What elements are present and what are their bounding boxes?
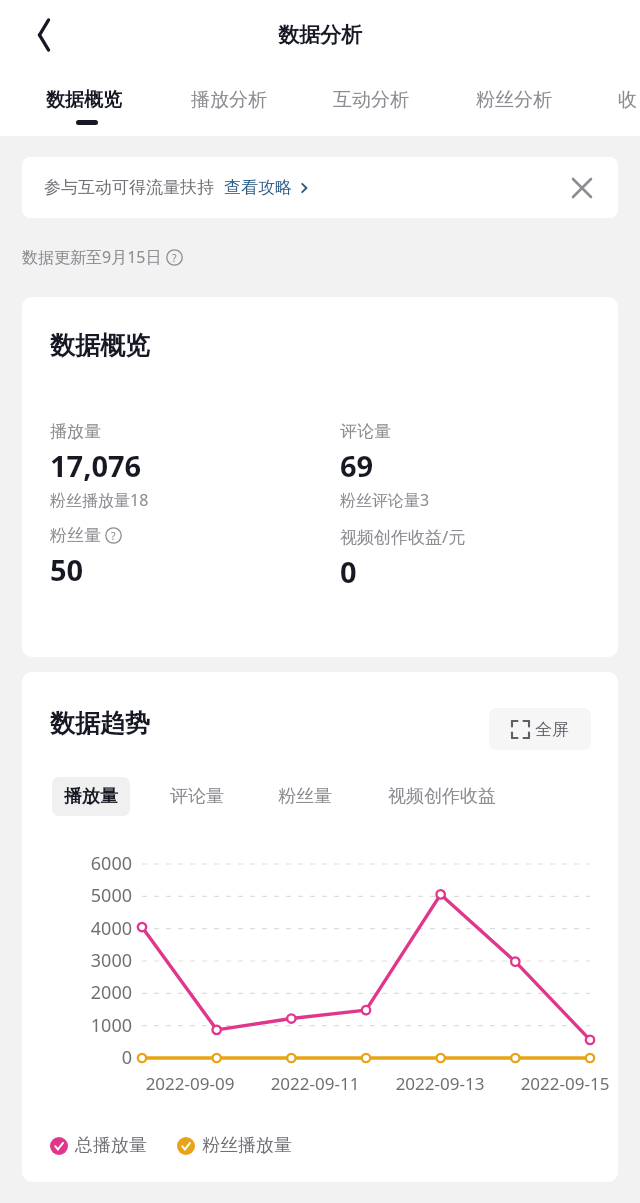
staticText: 6000 — [62, 851, 132, 876]
staticText: 2022-09-15 — [505, 1072, 618, 1095]
staticText: 查看攻略 — [224, 177, 292, 198]
button[interactable]: 收 — [618, 70, 637, 136]
staticText: 粉丝播放量18 — [50, 489, 149, 511]
staticText: 视频创作收益 — [388, 785, 496, 808]
button[interactable]: Back — [18, 9, 70, 61]
staticText: 1000 — [62, 1013, 132, 1038]
staticText: 播放分析 — [191, 88, 267, 112]
staticText: 数据概览 — [50, 330, 150, 361]
staticText: 50 — [50, 550, 84, 589]
staticText: 收 — [618, 88, 637, 112]
staticText: 数据概览 — [46, 88, 122, 112]
staticText: 5000 — [62, 883, 132, 908]
staticText: 数据分析 — [278, 22, 362, 48]
button[interactable]: 视频创作收益 — [380, 777, 504, 816]
button[interactable]: 全屏 — [489, 708, 591, 750]
staticText: ? — [111, 529, 116, 543]
staticText: 粉丝量 — [278, 785, 332, 808]
staticText: 粉丝评论量3 — [340, 489, 430, 511]
staticText: 播放量 — [64, 785, 118, 808]
staticText: 2000 — [62, 980, 132, 1005]
button[interactable]: 粉丝量 — [270, 777, 340, 816]
staticText: 数据趋势 — [50, 708, 150, 739]
staticText: 17,076 — [50, 446, 142, 485]
button[interactable]: 总播放量 — [50, 1134, 147, 1157]
staticText: 3000 — [62, 948, 132, 973]
staticText: 互动分析 — [333, 88, 409, 112]
button[interactable]: 参与互动可得流量扶持 — [22, 157, 618, 218]
staticText: 数据更新至9月15日 — [22, 246, 162, 268]
staticText: 参与互动可得流量扶持 — [44, 177, 214, 198]
staticText: 粉丝分析 — [476, 88, 552, 112]
staticText: 全屏 — [535, 719, 569, 740]
staticText: 4000 — [62, 916, 132, 941]
staticText: 69 — [340, 446, 374, 485]
button[interactable]: 互动分析 — [333, 70, 409, 136]
button[interactable]: 粉丝播放量 — [177, 1134, 292, 1157]
staticText: 粉丝量 — [50, 525, 101, 546]
staticText: 视频创作收益/元 — [340, 525, 466, 548]
staticText: 粉丝播放量 — [202, 1134, 292, 1157]
button[interactable]: 播放分析 — [191, 70, 267, 136]
staticText: 总播放量 — [75, 1134, 147, 1157]
staticText: 2022-09-09 — [130, 1072, 250, 1095]
button[interactable]: Close — [560, 166, 604, 210]
staticText: 评论量 — [170, 785, 224, 808]
button[interactable]: 数据概览 — [46, 70, 122, 136]
staticText: 2022-09-13 — [380, 1072, 500, 1095]
staticText: 评论量 — [340, 421, 391, 442]
staticText: ? — [172, 251, 177, 265]
staticText: 0 — [62, 1045, 132, 1070]
button[interactable]: 评论量 — [162, 777, 232, 816]
staticText: 2022-09-11 — [255, 1072, 375, 1095]
button[interactable]: 播放量 — [52, 777, 130, 816]
staticText: 播放量 — [50, 421, 101, 442]
staticText: 0 — [340, 552, 357, 591]
button[interactable]: 粉丝分析 — [476, 70, 552, 136]
